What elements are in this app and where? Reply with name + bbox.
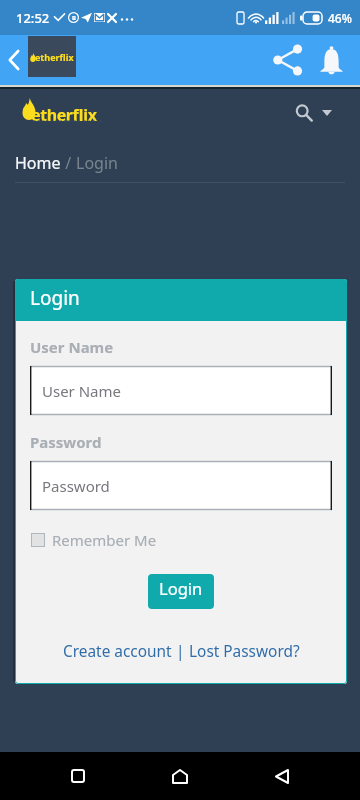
staticText: B — [72, 14, 76, 22]
staticText: User Name — [30, 337, 114, 357]
staticText: w a t c h s t r e a m i n g m o v i e s — [33, 118, 102, 123]
staticText: | — [172, 641, 189, 662]
staticText: etherflix — [31, 104, 97, 126]
button[interactable]: etherflix — [22, 98, 96, 128]
button[interactable]: User Name — [30, 366, 332, 415]
button[interactable]: Create account — [63, 641, 172, 662]
staticText: Login — [30, 285, 80, 311]
staticText: User Name — [42, 381, 122, 401]
staticText: / — [61, 152, 76, 174]
staticText: 46% — [328, 10, 352, 26]
button[interactable]: Home — [156, 752, 204, 800]
staticText: Password — [42, 476, 110, 496]
button[interactable]: Share — [264, 35, 312, 85]
staticText: etherflix — [35, 51, 74, 63]
staticText: Login — [76, 152, 118, 174]
staticText: Login — [159, 577, 203, 599]
button[interactable]: etherflix — [28, 36, 76, 77]
button[interactable]: Password — [30, 461, 332, 510]
button[interactable]: Login — [148, 574, 214, 609]
staticText: Remember Me — [52, 530, 157, 550]
button[interactable]: Notifications — [313, 35, 350, 85]
staticText: 12:52 — [16, 9, 50, 27]
button[interactable]: Home — [15, 152, 61, 174]
button[interactable]: Back — [258, 752, 306, 800]
button[interactable]: Lost Password? — [189, 641, 300, 662]
button[interactable]: Back — [0, 35, 28, 85]
button[interactable]: Recents — [54, 752, 102, 800]
button[interactable]: Menu — [318, 97, 336, 129]
button[interactable]: Remember Me — [31, 530, 157, 550]
staticText: Password — [30, 432, 102, 452]
button[interactable]: Search — [288, 97, 320, 129]
